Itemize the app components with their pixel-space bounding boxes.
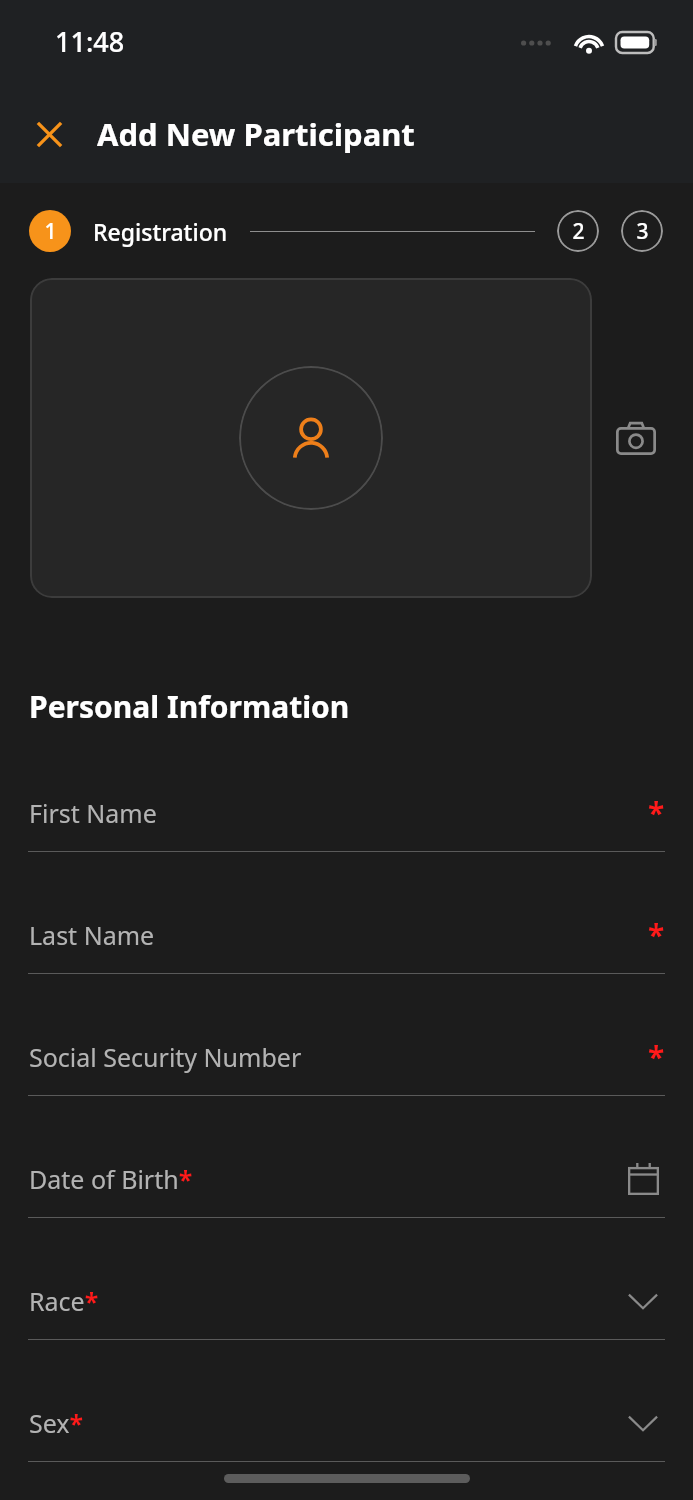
button[interactable]: Take photo bbox=[608, 410, 664, 466]
staticText: 3 bbox=[636, 217, 649, 246]
button[interactable]: Registration bbox=[93, 216, 228, 247]
staticText: 11:48 bbox=[55, 23, 125, 60]
staticText: Personal Information bbox=[29, 686, 350, 727]
staticText: 1 bbox=[44, 217, 57, 246]
button[interactable]: Expand Sex options bbox=[621, 1401, 665, 1445]
button[interactable]: Social Security Number bbox=[0, 1012, 693, 1134]
staticText: * bbox=[648, 792, 665, 833]
button[interactable]: Race* bbox=[0, 1256, 693, 1378]
staticText: * bbox=[648, 1036, 665, 1077]
button[interactable]: Sex* bbox=[0, 1378, 693, 1500]
button[interactable]: Last Name bbox=[0, 890, 693, 1012]
button[interactable]: Close bbox=[21, 106, 77, 162]
staticText: Race* bbox=[29, 1284, 99, 1318]
staticText: Date of Birth* bbox=[29, 1162, 193, 1196]
button[interactable]: 2 bbox=[557, 210, 599, 252]
staticText: Add New Participant bbox=[97, 113, 415, 155]
button[interactable]: Pick date bbox=[621, 1157, 665, 1201]
button[interactable]: Date of Birth* bbox=[0, 1134, 693, 1256]
button[interactable]: 3 bbox=[621, 210, 663, 252]
staticText: Sex* bbox=[29, 1406, 84, 1440]
button[interactable]: First Name bbox=[0, 768, 693, 890]
staticText: Last Name bbox=[29, 918, 155, 952]
staticText: 2 bbox=[572, 217, 585, 246]
button[interactable]: Expand Race options bbox=[621, 1279, 665, 1323]
staticText: First Name bbox=[29, 796, 157, 830]
staticText: * bbox=[648, 914, 665, 955]
button[interactable]: Add participant photo bbox=[30, 278, 592, 598]
staticText: Social Security Number bbox=[29, 1040, 302, 1074]
button[interactable]: 1 bbox=[29, 210, 71, 252]
